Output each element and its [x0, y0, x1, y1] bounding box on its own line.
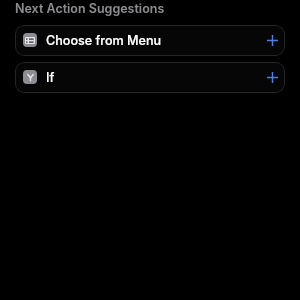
button[interactable]: If — [15, 62, 285, 93]
staticText: Next Action Suggestions — [15, 1, 165, 16]
button[interactable]: Add If action — [263, 68, 281, 86]
button[interactable]: Choose from Menu — [15, 25, 285, 56]
staticText: If — [46, 70, 55, 85]
button[interactable]: Add Choose from Menu action — [263, 31, 281, 49]
staticText: Choose from Menu — [46, 33, 162, 48]
